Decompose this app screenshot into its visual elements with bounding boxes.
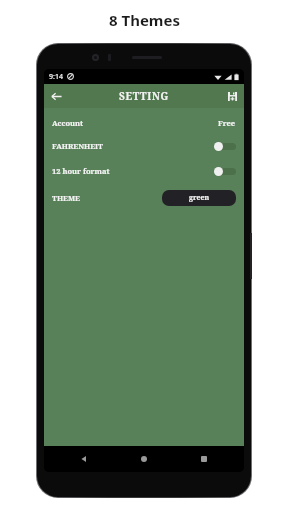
button[interactable]: Save <box>220 84 244 108</box>
button[interactable]: Home <box>124 446 164 472</box>
staticText: FAHRENHEIT <box>52 141 104 151</box>
button[interactable]: Account <box>44 114 244 131</box>
staticText: THEME <box>52 193 80 203</box>
button[interactable]: Back <box>64 446 104 472</box>
staticText: Free <box>218 118 236 128</box>
staticText: green <box>189 193 210 203</box>
staticText: 12 hour format <box>52 166 110 176</box>
button[interactable]: green <box>162 190 236 206</box>
button[interactable]: FAHRENHEIT <box>44 137 244 154</box>
staticText: SETTING <box>119 89 169 103</box>
button[interactable]: Recent apps <box>184 446 224 472</box>
button[interactable]: Back <box>44 84 68 108</box>
button[interactable]: 12 hour format <box>44 162 244 179</box>
staticText: 9:14 <box>49 72 63 82</box>
staticText: Account <box>52 118 84 128</box>
staticText: 8 Themes <box>109 10 180 30</box>
